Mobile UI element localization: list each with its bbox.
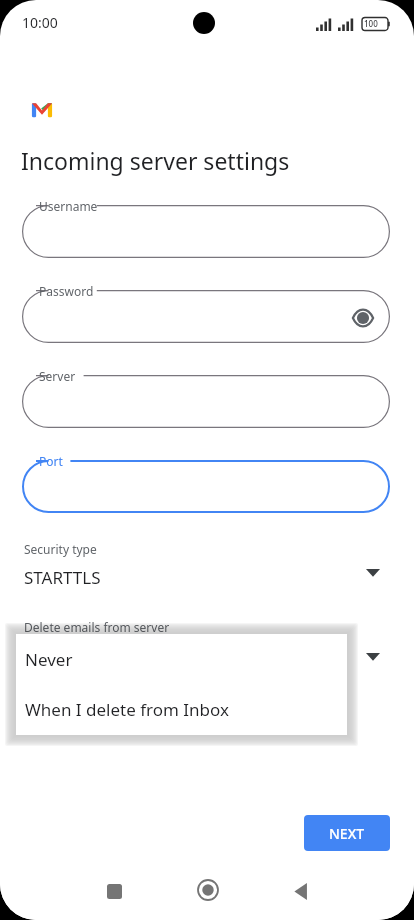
staticText: 100 xyxy=(364,18,378,29)
button[interactable]: Show password xyxy=(352,307,374,329)
staticText: NEXT xyxy=(329,824,365,843)
button[interactable]: Recent apps xyxy=(103,880,125,902)
button[interactable]: Delete emails from server dropdown xyxy=(365,652,381,664)
button[interactable]: Home xyxy=(195,877,221,903)
staticText: Delete emails from server xyxy=(24,619,170,635)
button[interactable]: Never xyxy=(16,634,347,684)
button[interactable]: Username xyxy=(22,205,390,258)
button[interactable]: Server xyxy=(22,375,390,428)
staticText: Server xyxy=(39,368,76,384)
staticText: 10:00 xyxy=(22,13,58,32)
staticText: Username xyxy=(39,198,98,214)
staticText: Password xyxy=(39,283,94,299)
staticText: STARTTLS xyxy=(24,566,101,589)
staticText: Incoming server settings xyxy=(21,145,290,176)
button[interactable]: NEXT xyxy=(304,815,390,851)
staticText: Security type xyxy=(24,541,97,557)
button[interactable]: When I delete from Inbox xyxy=(16,684,347,735)
staticText: Never xyxy=(25,648,73,671)
button[interactable]: Security type xyxy=(16,535,398,597)
button[interactable]: Password xyxy=(22,290,390,343)
staticText: When I delete from Inbox xyxy=(25,698,229,721)
staticText: Port xyxy=(39,453,63,469)
button[interactable]: Port xyxy=(22,460,390,513)
button[interactable]: Back xyxy=(289,879,313,903)
